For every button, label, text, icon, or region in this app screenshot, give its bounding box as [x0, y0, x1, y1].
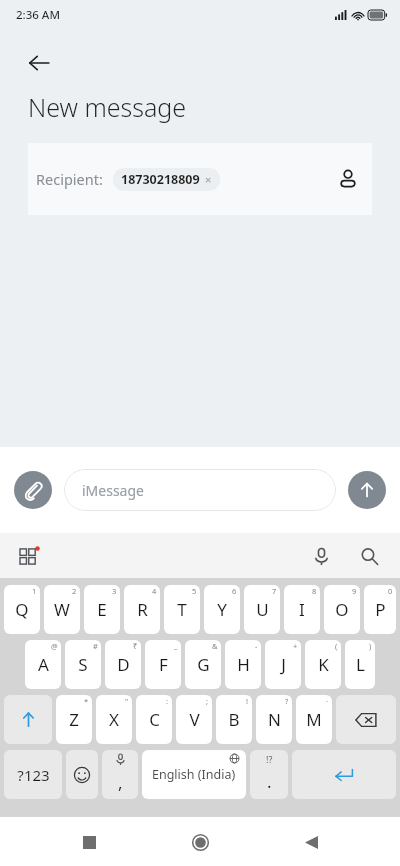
staticText: +	[293, 641, 298, 651]
staticText: -	[255, 641, 258, 651]
button[interactable]: :	[136, 695, 172, 744]
button[interactable]: 3	[84, 585, 120, 634]
staticText: )	[369, 641, 372, 651]
staticText: O	[335, 598, 349, 621]
button[interactable]: Recent apps	[67, 820, 111, 864]
button[interactable]: _	[145, 640, 181, 689]
staticText: 18730218809	[121, 171, 200, 188]
button[interactable]: Back	[289, 820, 333, 864]
button[interactable]: 0	[364, 585, 396, 634]
staticText: 5	[192, 586, 197, 596]
button[interactable]: 18730218809	[113, 168, 220, 191]
staticText: !	[246, 696, 249, 706]
staticText: 0	[388, 586, 393, 596]
button[interactable]: Keyboard options	[12, 539, 46, 573]
staticText: X	[109, 708, 119, 731]
button[interactable]: 8	[284, 585, 320, 634]
button[interactable]: English (India)	[142, 750, 246, 799]
button[interactable]: ₹	[105, 640, 141, 689]
button[interactable]: 4	[124, 585, 160, 634]
staticText: D	[117, 653, 130, 676]
staticText: A	[38, 653, 49, 676]
button[interactable]: "	[96, 695, 132, 744]
staticText: Z	[69, 708, 79, 731]
staticText: N	[268, 708, 281, 731]
button[interactable]: 1	[4, 585, 40, 634]
staticText: "	[125, 696, 129, 706]
button[interactable]: (	[305, 640, 341, 689]
button[interactable]: 6	[204, 585, 240, 634]
staticText: .	[267, 770, 272, 793]
staticText: I	[299, 598, 305, 621]
button[interactable]: )	[345, 640, 375, 689]
staticText: #	[93, 641, 98, 651]
staticText: M	[306, 708, 322, 731]
staticText: iMessage	[82, 481, 144, 500]
button[interactable]: !	[216, 695, 252, 744]
button[interactable]: ;	[176, 695, 212, 744]
button[interactable]: 5	[164, 585, 200, 634]
button[interactable]	[4, 695, 52, 744]
staticText: _	[174, 641, 178, 651]
staticText: ?123	[17, 765, 50, 785]
button[interactable]: Send	[348, 471, 386, 509]
staticText: G	[197, 653, 210, 676]
button[interactable]: &	[185, 640, 221, 689]
staticText: 1	[32, 586, 37, 596]
button[interactable]: Back	[18, 42, 60, 84]
button[interactable]: Home	[178, 820, 222, 864]
button[interactable]: Choose contact	[330, 161, 366, 197]
staticText: 8	[312, 586, 317, 596]
staticText: C	[149, 708, 160, 731]
staticText: ₹	[133, 641, 138, 651]
staticText: S	[78, 653, 88, 676]
staticText: 3	[112, 586, 117, 596]
staticText: E	[97, 598, 107, 621]
staticText: English (India)	[152, 766, 236, 783]
staticText: ·	[326, 696, 329, 706]
staticText: W	[54, 598, 70, 621]
button[interactable]: ,	[102, 750, 138, 799]
staticText: 9	[352, 586, 357, 596]
staticText: ?	[285, 696, 289, 706]
staticText: Recipient:	[36, 169, 103, 189]
button[interactable]: 9	[324, 585, 360, 634]
button[interactable]: Search	[352, 539, 386, 573]
staticText: *	[84, 696, 89, 706]
button[interactable]: !?	[250, 750, 288, 799]
button[interactable]: *	[56, 695, 92, 744]
button[interactable]: -	[225, 640, 261, 689]
button[interactable]: @	[25, 640, 61, 689]
staticText: L	[356, 653, 365, 676]
button[interactable]: Backspace	[336, 695, 396, 744]
staticText: @	[51, 641, 58, 651]
button[interactable]: Recipient:	[28, 143, 372, 215]
button[interactable]: +	[265, 640, 301, 689]
staticText: &	[212, 641, 218, 651]
staticText: R	[137, 598, 148, 621]
staticText: New message	[28, 90, 187, 124]
button[interactable]: Attach	[14, 471, 52, 509]
button[interactable]: 7	[244, 585, 280, 634]
staticText: 2	[72, 586, 77, 596]
button[interactable]: ?123	[4, 750, 62, 799]
staticText: V	[189, 708, 200, 731]
button[interactable]: #	[65, 640, 101, 689]
staticText: (	[335, 641, 338, 651]
button[interactable]	[66, 750, 98, 799]
button[interactable]: ?	[256, 695, 292, 744]
button[interactable]: Enter	[292, 750, 396, 799]
staticText: 2:36 AM	[16, 7, 60, 23]
staticText: ,	[118, 771, 123, 794]
button[interactable]: iMessage	[64, 469, 336, 511]
staticText: Y	[217, 598, 227, 621]
staticText: J	[281, 653, 286, 676]
staticText: Q	[15, 598, 29, 621]
staticText: F	[159, 653, 168, 676]
button[interactable]: 2	[44, 585, 80, 634]
button[interactable]: Voice input	[304, 539, 338, 573]
staticText: ;	[206, 696, 209, 706]
staticText: :	[166, 696, 169, 706]
button[interactable]: ·	[296, 695, 332, 744]
staticText: H	[237, 653, 250, 676]
